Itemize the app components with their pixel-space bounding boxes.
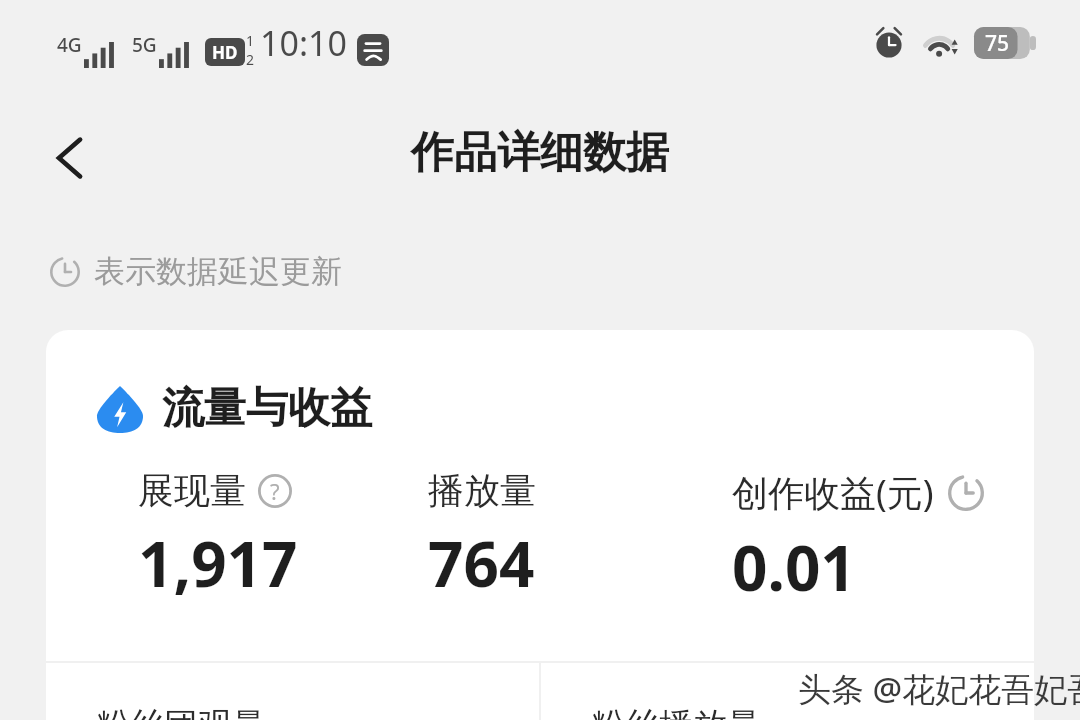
staticText: HD <box>212 41 238 64</box>
staticText: 表示数据延迟更新 <box>94 252 342 291</box>
staticText: 流量与收益 <box>162 382 372 435</box>
staticText: ? <box>270 476 280 506</box>
staticText: 4G <box>57 32 82 58</box>
staticText: 75 <box>985 29 1010 58</box>
button[interactable]: Help <box>258 474 292 508</box>
staticText: 粉丝团观量 <box>96 704 266 720</box>
staticText: 作品详细数据 <box>0 126 1080 180</box>
staticText: 1 <box>246 31 255 50</box>
button[interactable]: Delayed data <box>948 475 984 511</box>
staticText: 2 <box>246 50 255 69</box>
staticText: 764 <box>428 521 535 605</box>
staticText: 创作收益(元) <box>732 468 934 517</box>
staticText: 1,917 <box>138 521 298 605</box>
staticText: 10:10 <box>260 20 347 66</box>
button[interactable]: 流量与收益 <box>96 382 372 435</box>
button[interactable]: 展现量 <box>138 468 298 605</box>
button[interactable]: 创作收益(元) <box>732 468 984 609</box>
button[interactable]: 播放量 <box>428 468 536 605</box>
staticText: 0.01 <box>732 525 856 609</box>
staticText: 头条 @花妃花吾妃吾 <box>798 666 1080 711</box>
staticText: 5G <box>132 32 157 58</box>
staticText: 粉丝播放量 <box>591 704 761 720</box>
staticText: 展现量 <box>138 468 246 513</box>
staticText: 播放量 <box>428 468 536 513</box>
button[interactable]: Back <box>22 110 118 206</box>
